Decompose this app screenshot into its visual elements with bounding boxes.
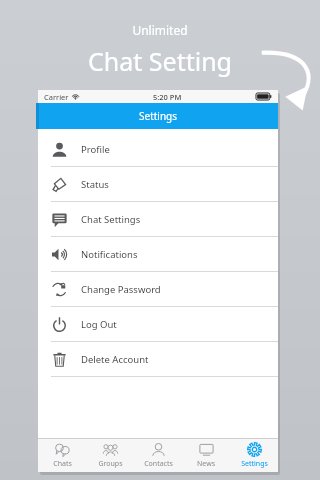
button[interactable]: Chat Settings xyxy=(38,202,278,237)
staticText: Settings xyxy=(241,459,268,469)
staticText: Settings xyxy=(139,109,178,123)
button[interactable]: News xyxy=(182,439,230,472)
staticText: Carrier xyxy=(44,92,69,102)
staticText: Chat Setting xyxy=(88,44,232,78)
staticText: Notifications xyxy=(81,248,138,261)
button[interactable]: Chats xyxy=(38,439,86,472)
staticText: Chats xyxy=(53,459,72,469)
button[interactable]: Delete Account xyxy=(38,342,278,377)
button[interactable]: Settings xyxy=(230,439,278,472)
button[interactable]: Status xyxy=(38,167,278,202)
staticText: Delete Account xyxy=(81,353,149,366)
staticText: 5:20 PM xyxy=(153,92,182,102)
staticText: Status xyxy=(81,178,109,191)
staticText: Contacts xyxy=(144,459,173,469)
staticText: Groups xyxy=(98,459,123,469)
button[interactable]: Log Out xyxy=(38,307,278,342)
staticText: Chat Settings xyxy=(81,213,141,226)
staticText: News xyxy=(197,459,215,469)
staticText: Log Out xyxy=(81,318,117,331)
staticText: Unlimited xyxy=(132,22,188,38)
button[interactable]: Notifications xyxy=(38,237,278,272)
button[interactable]: Groups xyxy=(86,439,134,472)
button[interactable]: Profile xyxy=(38,132,278,167)
staticText: Change Password xyxy=(81,283,161,296)
button[interactable]: Change Password xyxy=(38,272,278,307)
button[interactable]: Contacts xyxy=(134,439,182,472)
staticText: Profile xyxy=(81,143,110,156)
